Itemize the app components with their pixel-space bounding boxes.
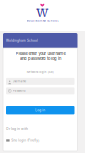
staticText: Network login (AD) bbox=[27, 70, 54, 74]
staticText: Username bbox=[12, 80, 26, 83]
staticText: Or log in with bbox=[6, 127, 28, 131]
staticText: Site login (Firefly) bbox=[11, 138, 39, 142]
button[interactable]: Log in bbox=[6, 106, 74, 114]
button[interactable]: Password bbox=[6, 87, 74, 94]
staticText: Woldingham School bbox=[6, 39, 38, 42]
staticText: Log in bbox=[35, 108, 45, 112]
staticText: WOLDINGHAM SCHOOL bbox=[26, 20, 58, 22]
button[interactable]: Username bbox=[6, 78, 74, 85]
staticText: Password bbox=[13, 89, 26, 93]
button[interactable]: Site login (Firefly) bbox=[6, 138, 39, 142]
staticText: Please enter your username and password … bbox=[15, 51, 65, 61]
staticText: W bbox=[36, 4, 48, 21]
